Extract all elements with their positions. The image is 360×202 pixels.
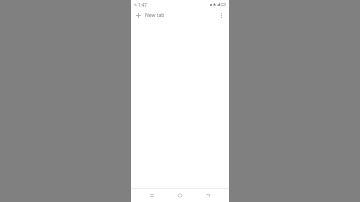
button[interactable]: New tab <box>145 9 217 21</box>
button[interactable]: New tab <box>134 11 143 20</box>
staticText: 1:47 <box>138 2 147 8</box>
button[interactable]: More options <box>217 11 226 20</box>
button[interactable]: Back <box>201 189 215 202</box>
staticText: New tab <box>145 12 165 19</box>
button[interactable]: Home <box>173 189 187 202</box>
button[interactable]: Recents <box>145 189 159 202</box>
